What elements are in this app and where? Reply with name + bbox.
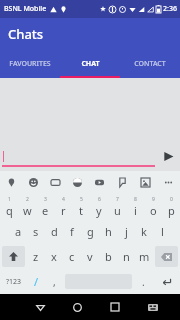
button[interactable]: m xyxy=(135,244,153,269)
staticText: 6 xyxy=(98,196,101,203)
button[interactable]: d xyxy=(45,219,63,244)
button[interactable]: Send xyxy=(159,147,177,165)
staticText: 7 xyxy=(116,196,119,203)
staticText: i xyxy=(134,203,137,218)
staticText: m xyxy=(139,249,150,264)
button[interactable]: More xyxy=(157,171,180,194)
staticText: 2 xyxy=(26,196,29,203)
staticText: s xyxy=(33,224,39,239)
button[interactable]: k xyxy=(135,219,153,244)
button[interactable]: 8 xyxy=(126,194,144,219)
button[interactable]: . xyxy=(134,269,152,294)
button[interactable]: 9 xyxy=(144,194,162,219)
staticText: f xyxy=(70,224,74,239)
staticText: 3 xyxy=(44,196,47,203)
staticText: BSNL Mobile xyxy=(4,4,47,14)
button[interactable]: Emoji xyxy=(22,171,44,194)
staticText: 9 xyxy=(152,196,155,203)
button[interactable]: 7 xyxy=(108,194,126,219)
button[interactable]: , xyxy=(45,269,63,294)
staticText: g xyxy=(87,224,94,239)
staticText: l xyxy=(161,224,164,239)
staticText: 2:36 xyxy=(163,4,177,14)
button[interactable]: Image xyxy=(134,171,157,194)
button[interactable]: h xyxy=(99,219,117,244)
staticText: 4 xyxy=(62,196,65,203)
button[interactable]: 0 xyxy=(162,194,180,219)
staticText: CONTACT xyxy=(134,59,166,69)
button[interactable]: s xyxy=(27,219,45,244)
staticText: a xyxy=(15,224,22,239)
staticText: k xyxy=(141,224,147,239)
staticText: p xyxy=(168,203,175,218)
button[interactable]: f xyxy=(63,219,81,244)
button[interactable]: Recents xyxy=(96,294,134,320)
button[interactable]: Backspace xyxy=(155,246,178,267)
button[interactable]: 2 xyxy=(18,194,36,219)
button[interactable]: n xyxy=(117,244,135,269)
staticText: h xyxy=(105,224,112,239)
staticText: / xyxy=(34,274,39,289)
button[interactable]: v xyxy=(81,244,99,269)
staticText: w xyxy=(23,203,32,218)
button[interactable]: Switch keyboard xyxy=(134,294,172,320)
button[interactable]: ?123 xyxy=(0,269,27,294)
button[interactable]: Location xyxy=(0,171,22,194)
staticText: q xyxy=(6,203,13,218)
staticText: ?123 xyxy=(6,277,22,287)
staticText: n xyxy=(123,249,130,264)
button[interactable]: Enter xyxy=(152,269,180,294)
button[interactable]: Close keyboard xyxy=(22,294,59,320)
button[interactable]: Sticker xyxy=(66,171,88,194)
staticText: Chats xyxy=(8,25,44,43)
button[interactable]: x xyxy=(45,244,63,269)
button[interactable]: g xyxy=(81,219,99,244)
staticText: , xyxy=(53,275,56,289)
staticText: b xyxy=(105,249,112,264)
staticText: j xyxy=(125,224,128,239)
button[interactable]: Shift xyxy=(2,246,25,267)
button[interactable] xyxy=(2,141,155,171)
button[interactable]: CONTACT xyxy=(120,50,180,78)
button[interactable]: 1 xyxy=(0,194,18,219)
button[interactable]: CHAT xyxy=(60,50,120,78)
button[interactable]: FAVOURITES xyxy=(0,50,60,78)
staticText: FAVOURITES xyxy=(9,59,51,69)
staticText: e xyxy=(42,203,49,218)
button[interactable]: 4 xyxy=(54,194,72,219)
staticText: 0 xyxy=(170,196,173,203)
button[interactable]: 3 xyxy=(36,194,54,219)
staticText: c xyxy=(69,249,75,264)
staticText: d xyxy=(51,224,58,239)
staticText: 8 xyxy=(134,196,137,203)
button[interactable]: a xyxy=(9,219,27,244)
staticText: r xyxy=(61,203,66,218)
button[interactable]: j xyxy=(117,219,135,244)
button[interactable]: l xyxy=(153,219,171,244)
staticText: . xyxy=(142,275,145,289)
button[interactable]: GIF xyxy=(44,171,66,194)
staticText: v xyxy=(87,249,93,264)
button[interactable]: 5 xyxy=(72,194,90,219)
staticText: CHAT xyxy=(81,59,100,69)
staticText: u xyxy=(114,203,121,218)
button[interactable]: 6 xyxy=(90,194,108,219)
button[interactable]: z xyxy=(27,244,45,269)
staticText: x xyxy=(51,249,57,264)
button[interactable]: YouTube xyxy=(88,171,111,194)
staticText: 5 xyxy=(80,196,83,203)
button[interactable]: c xyxy=(63,244,81,269)
staticText: t xyxy=(79,203,83,218)
button[interactable]: Check in xyxy=(111,171,134,194)
staticText: y xyxy=(96,203,102,218)
staticText: z xyxy=(33,249,39,264)
staticText: o xyxy=(150,203,157,218)
button[interactable]: b xyxy=(99,244,117,269)
button[interactable]: Home xyxy=(59,294,96,320)
button[interactable]: / xyxy=(27,269,45,294)
staticText: 1 xyxy=(8,196,11,203)
